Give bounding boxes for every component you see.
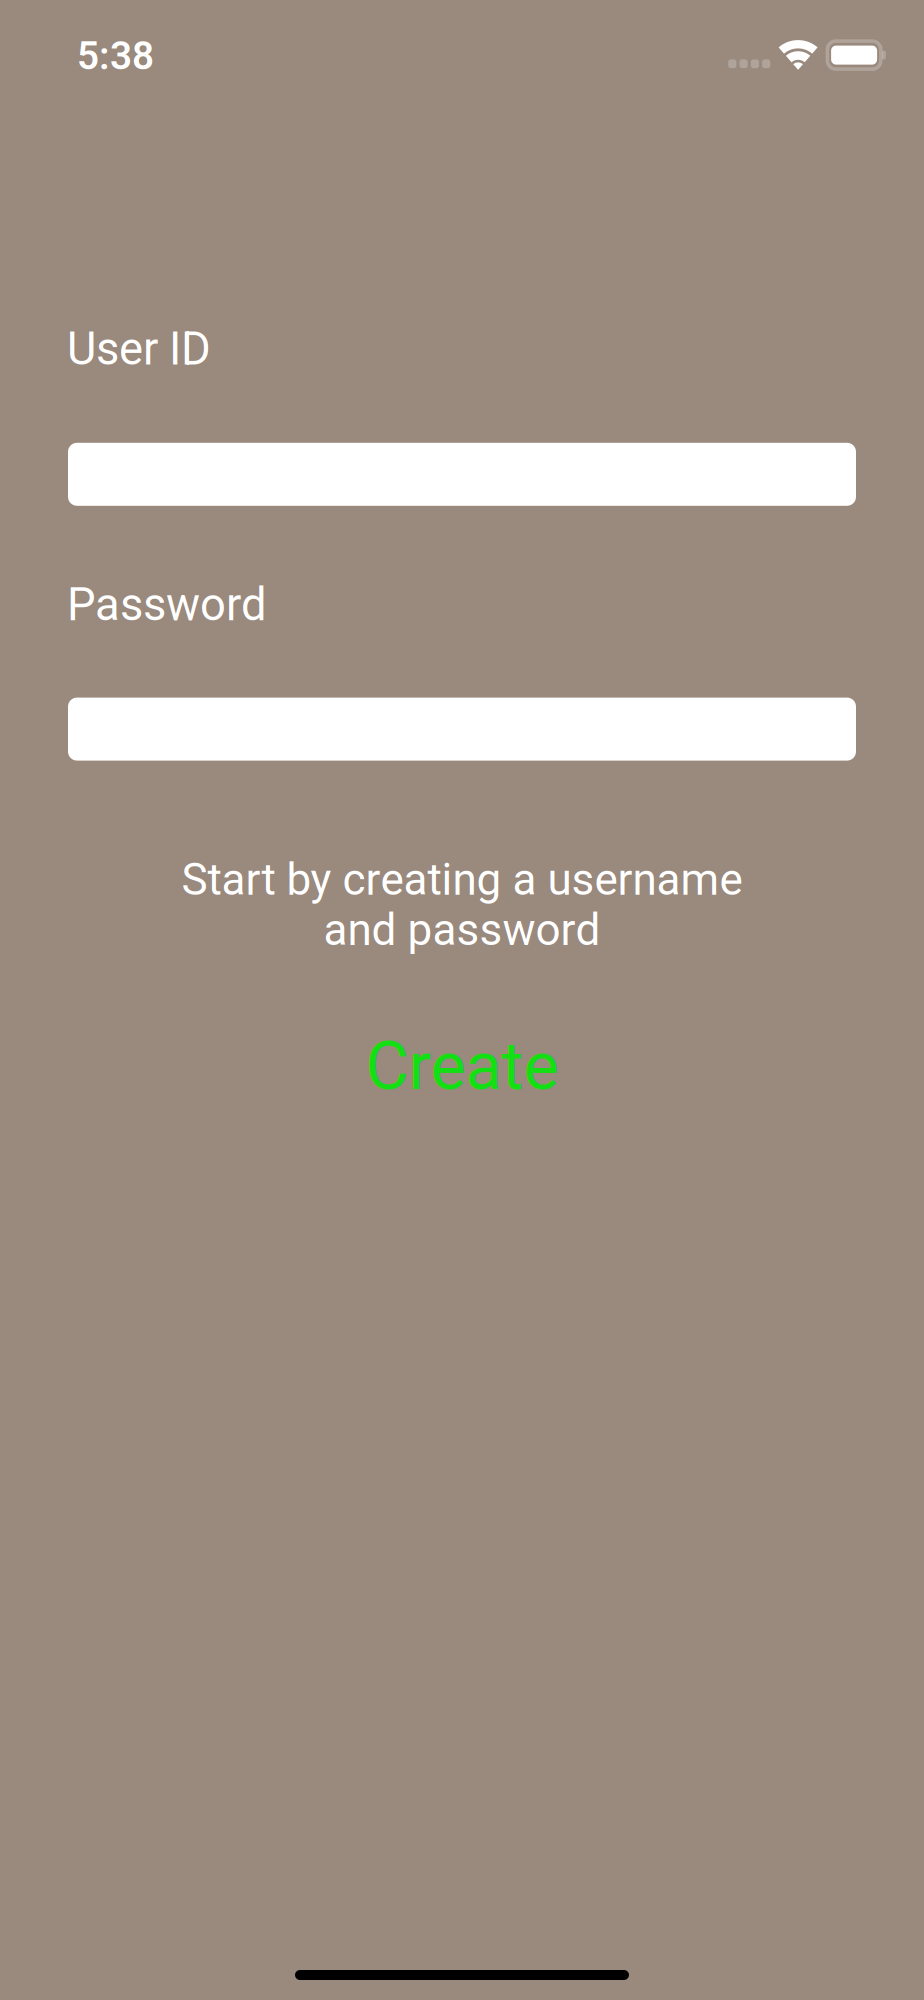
staticText: 5:38 bbox=[77, 34, 154, 78]
staticText: Create bbox=[365, 1028, 558, 1104]
staticText: User ID bbox=[67, 323, 211, 375]
button[interactable]: Create bbox=[365, 1028, 558, 1104]
staticText: Start by creating a username bbox=[181, 855, 742, 905]
button[interactable]: Password text field bbox=[68, 698, 856, 761]
staticText: Password bbox=[67, 579, 267, 631]
staticText: and password bbox=[323, 905, 600, 955]
button[interactable]: User ID text field bbox=[68, 443, 856, 506]
